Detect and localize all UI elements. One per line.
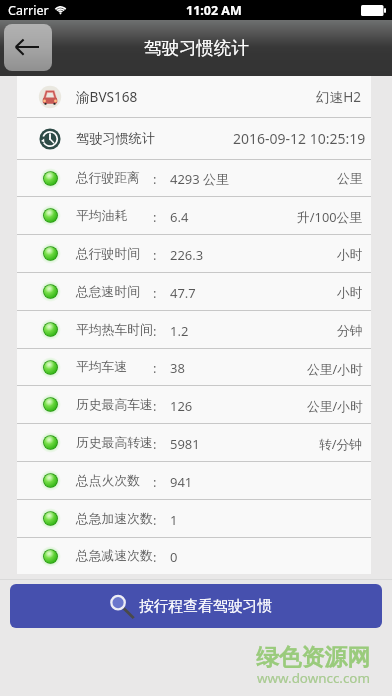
staticText: : [153, 170, 157, 188]
staticText: 历史最高转速 [76, 435, 153, 451]
staticText: 驾驶习惯统计 [144, 37, 249, 59]
staticText: 47.7 [170, 284, 196, 302]
button[interactable]: 平均热车时间 [17, 311, 371, 348]
staticText: 4293 公里 [170, 170, 230, 188]
staticText: www.downcc.com [257, 669, 370, 687]
button[interactable]: Back [4, 24, 52, 71]
staticText: 平均车速 [76, 359, 128, 375]
staticText: 11:02 AM [186, 2, 242, 19]
staticText: 总点火次数 [76, 473, 140, 489]
staticText: 1 [170, 511, 178, 529]
staticText: 1.2 [170, 322, 189, 340]
staticText: 38 [170, 359, 185, 377]
staticText: : [153, 435, 157, 453]
staticText: 按行程查看驾驶习惯 [139, 597, 273, 616]
staticText: 公里 [337, 171, 363, 187]
staticText: : [153, 548, 157, 566]
staticText: : [153, 511, 157, 529]
button[interactable]: 总急减速次数 [17, 538, 371, 574]
button[interactable]: 总怠速时间 [17, 273, 371, 310]
button[interactable]: 驾驶习惯统计 [17, 118, 371, 159]
button[interactable]: 历史最高转速 [17, 424, 371, 461]
staticText: 0 [170, 548, 178, 566]
staticText: 小时 [337, 285, 363, 301]
staticText: 总行驶时间 [76, 246, 140, 262]
button[interactable]: 总点火次数 [17, 462, 371, 499]
staticText: : [153, 284, 157, 302]
button[interactable]: 按行程查看驾驶习惯 [10, 584, 382, 628]
staticText: 5981 [170, 435, 200, 453]
staticText: : [153, 359, 157, 377]
staticText: 分钟 [337, 323, 363, 339]
staticText: 公里/小时 [307, 397, 363, 414]
staticText: 驾驶习惯统计 [76, 130, 156, 147]
staticText: 幻速H2 [316, 87, 362, 106]
button[interactable]: 平均车速 [17, 349, 371, 385]
staticText: 总怠速时间 [76, 284, 140, 300]
staticText: : [153, 397, 157, 415]
staticText: 总急加速次数 [76, 511, 153, 527]
button[interactable]: 总行驶距离 [17, 160, 371, 196]
staticText: 126 [170, 397, 193, 415]
button[interactable]: 总急加速次数 [17, 500, 371, 537]
staticText: : [153, 246, 157, 264]
staticText: 总急减速次数 [76, 548, 153, 564]
staticText: : [153, 322, 157, 340]
button[interactable]: 渝BVS168 [17, 76, 371, 117]
staticText: 2016-09-12 10:25:19 [233, 129, 366, 148]
staticText: Carrier [8, 2, 49, 19]
staticText: 226.3 [170, 246, 204, 264]
staticText: 升/100公里 [297, 208, 363, 225]
staticText: 渝BVS168 [76, 87, 138, 106]
staticText: : [153, 208, 157, 226]
button[interactable]: 平均油耗 [17, 197, 371, 234]
staticText: 6.4 [170, 208, 189, 226]
staticText: 平均油耗 [76, 208, 128, 224]
staticText: 公里/小时 [307, 360, 363, 377]
staticText: 平均热车时间 [76, 322, 153, 338]
staticText: : [153, 473, 157, 491]
button[interactable]: 历史最高车速 [17, 386, 371, 423]
staticText: 历史最高车速 [76, 397, 153, 413]
staticText: 转/分钟 [319, 435, 363, 452]
button[interactable]: 总行驶时间 [17, 235, 371, 272]
staticText: 总行驶距离 [76, 170, 140, 186]
staticText: 小时 [337, 247, 363, 263]
staticText: 941 [170, 473, 193, 491]
staticText: 绿色资源网 [256, 643, 370, 672]
